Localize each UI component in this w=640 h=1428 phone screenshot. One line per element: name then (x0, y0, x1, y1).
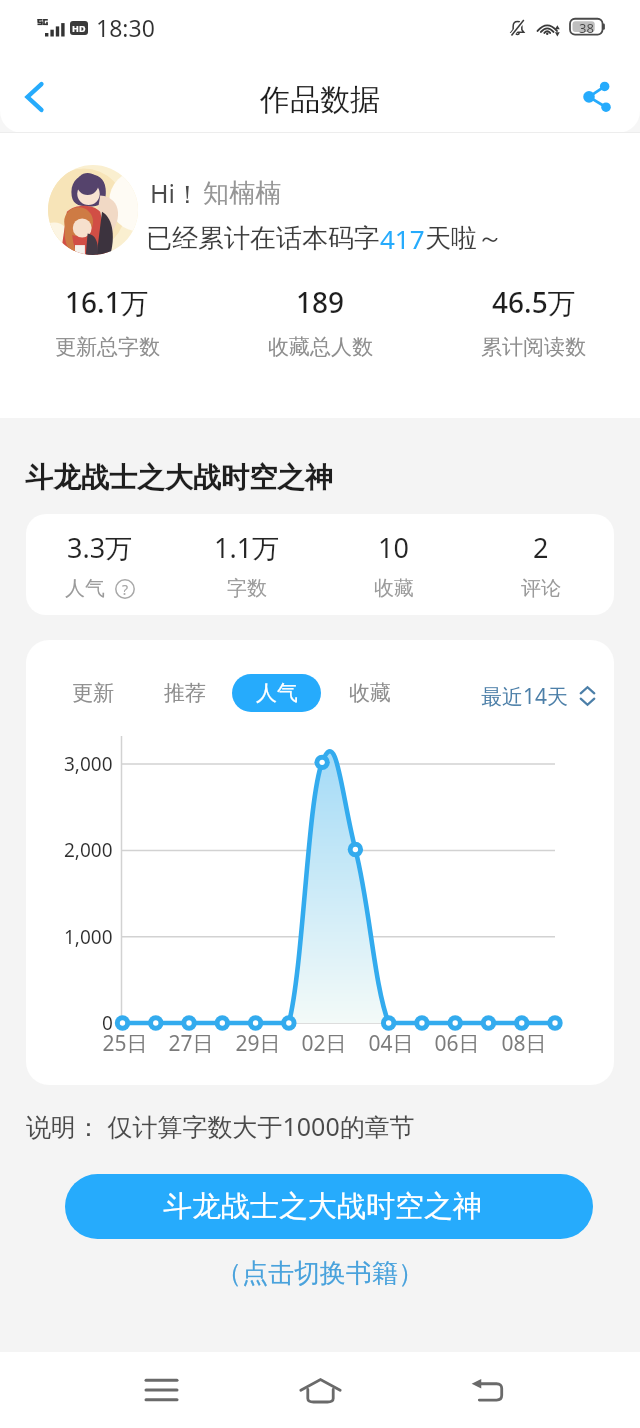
staticText: 417 (380, 221, 425, 256)
staticText: 02日 (301, 1029, 347, 1058)
staticText: Hi！ (150, 176, 200, 210)
staticText: 06日 (434, 1029, 480, 1058)
staticText: 更新 (72, 680, 114, 706)
staticText: 斗龙战士之大战时空之神 (25, 460, 333, 495)
staticText: 29日 (235, 1029, 281, 1058)
button[interactable]: Back (2, 61, 70, 133)
staticText: 2,000 (64, 837, 113, 863)
staticText: 收藏 (349, 680, 391, 706)
staticText: 最近14天 (481, 682, 569, 711)
staticText: HD (72, 22, 86, 34)
staticText: 27日 (168, 1029, 214, 1058)
staticText: ? (122, 580, 129, 599)
button[interactable]: 推荐 (140, 674, 229, 712)
staticText: 更新总字数 (55, 334, 160, 360)
staticText: 累计阅读数 (481, 334, 586, 360)
button[interactable]: （点击切换书籍） (216, 1257, 424, 1290)
staticText: 人气 (256, 680, 298, 706)
staticText: 1.1万 (214, 529, 280, 566)
button[interactable]: 人气 (232, 674, 321, 712)
staticText: 16.1万 (65, 283, 149, 321)
staticText: 评论 (521, 576, 561, 601)
button[interactable]: Recent apps (125, 1354, 197, 1426)
staticText: 1,000 (64, 924, 113, 950)
staticText: 04日 (368, 1029, 414, 1058)
staticText: 斗龙战士之大战时空之神 (163, 1188, 482, 1225)
staticText: 46.5万 (492, 283, 576, 321)
staticText: 08日 (501, 1029, 547, 1058)
staticText: 25日 (102, 1029, 148, 1058)
staticText: 10 (378, 529, 409, 566)
staticText: 人气 (65, 576, 105, 601)
staticText: 作品数据 (260, 81, 380, 119)
staticText: 字数 (227, 576, 267, 601)
staticText: 推荐 (164, 680, 206, 706)
staticText: 2 (533, 529, 549, 566)
staticText: 收藏 (374, 576, 414, 601)
staticText: 说明： 仅计算字数大于1000的章节 (26, 1109, 415, 1143)
staticText: 38 (579, 19, 594, 37)
staticText: 189 (296, 283, 345, 321)
button[interactable]: 收藏 (325, 674, 414, 712)
staticText: 已经累计在话本码字 (146, 222, 380, 255)
staticText: 3.3万 (67, 529, 133, 566)
staticText: 0 (102, 1010, 113, 1036)
staticText: 知楠楠 (203, 177, 281, 210)
button[interactable]: Home (284, 1354, 356, 1426)
staticText: 18:30 (96, 12, 155, 43)
button[interactable]: 斗龙战士之大战时空之神 (65, 1174, 593, 1239)
staticText: 3,000 (64, 751, 113, 777)
button[interactable]: Back (451, 1354, 523, 1426)
staticText: 收藏总人数 (268, 334, 373, 360)
button[interactable]: 最近14天 (481, 677, 596, 715)
button[interactable]: Share (566, 60, 628, 132)
staticText: 天啦～ (425, 222, 503, 255)
button[interactable]: 更新 (48, 674, 137, 712)
